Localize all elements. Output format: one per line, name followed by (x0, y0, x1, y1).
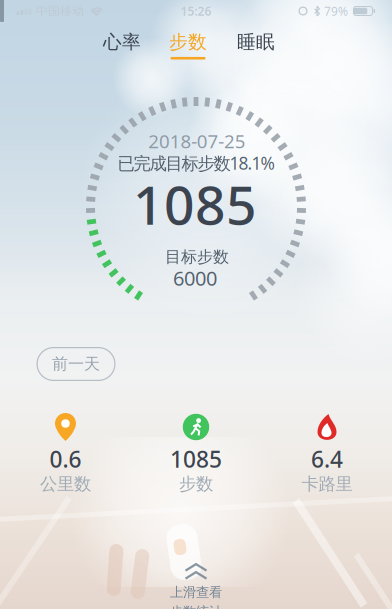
staticText: 79% (324, 3, 348, 19)
staticText: 步数 (169, 30, 207, 53)
button[interactable]: 心率 (93, 26, 151, 58)
staticText: 15:26 (180, 3, 211, 19)
staticText: 步数 (179, 473, 213, 495)
button[interactable]: 前一天 (36, 347, 115, 381)
staticText: 前一天 (52, 354, 100, 374)
staticText: 心率 (103, 30, 141, 53)
staticText: 公里数 (40, 473, 91, 495)
staticText: 2018-07-25 (148, 129, 246, 153)
staticText: 卡路里 (301, 473, 352, 495)
staticText: 已完成目标步数18.1% (117, 151, 274, 174)
button[interactable]: 步数 (159, 26, 217, 64)
staticText: 1085 (170, 444, 222, 474)
staticText: 上滑查看 (170, 584, 222, 600)
staticText: 睡眠 (237, 30, 275, 53)
button[interactable]: 上滑查看 (136, 562, 256, 609)
staticText: 步数统计 (170, 603, 222, 609)
staticText: 6.4 (311, 444, 343, 474)
button[interactable]: 睡眠 (227, 26, 285, 58)
staticText: 中国移动 (36, 4, 84, 18)
staticText: 6000 (173, 265, 217, 291)
staticText: 0.6 (49, 444, 81, 474)
staticText: 1085 (133, 169, 257, 239)
staticText: 目标步数 (165, 247, 229, 267)
